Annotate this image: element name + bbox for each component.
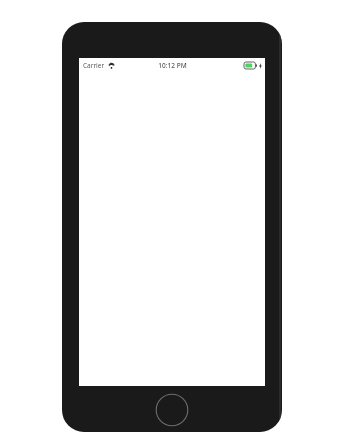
staticText: 10:12 PM <box>158 61 187 70</box>
button[interactable]: Home <box>155 393 189 427</box>
staticText: Carrier <box>83 61 105 70</box>
